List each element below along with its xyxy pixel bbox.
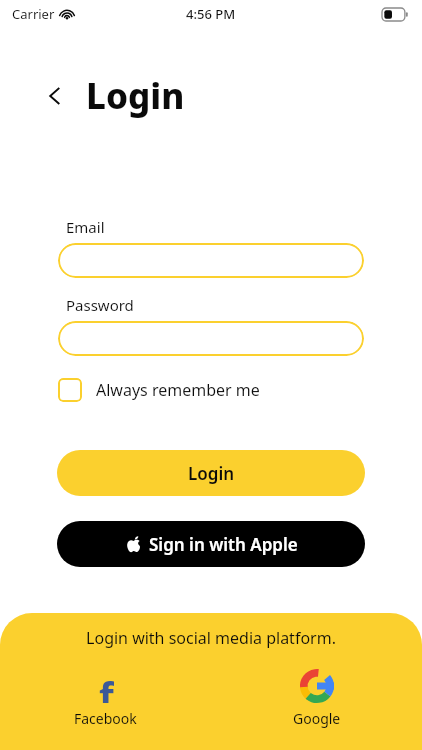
staticText: Email bbox=[66, 217, 105, 237]
button[interactable] bbox=[58, 243, 364, 278]
staticText: Login with social media platform. bbox=[86, 627, 336, 649]
staticText: Login bbox=[86, 72, 185, 120]
staticText: Password bbox=[66, 295, 134, 315]
staticText: Login bbox=[188, 462, 235, 485]
staticText: Carrier bbox=[12, 5, 55, 23]
button[interactable]: Always remember me bbox=[58, 375, 260, 405]
button[interactable] bbox=[58, 321, 364, 356]
staticText: f bbox=[99, 669, 114, 703]
button[interactable]: Google bbox=[277, 667, 357, 730]
staticText: Facebook bbox=[74, 709, 137, 728]
staticText: Sign in with Apple bbox=[149, 533, 298, 556]
staticText: Always remember me bbox=[96, 379, 260, 401]
staticText: Google bbox=[293, 709, 341, 728]
staticText: 4:56 PM bbox=[186, 5, 236, 23]
button[interactable]: Login bbox=[57, 450, 365, 496]
button[interactable]: Sign in with Apple bbox=[57, 521, 365, 567]
button[interactable]: f bbox=[58, 667, 153, 730]
button[interactable]: Back bbox=[38, 79, 72, 113]
